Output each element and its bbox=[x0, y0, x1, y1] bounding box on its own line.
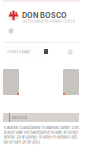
staticText: NOVICE bbox=[12, 115, 27, 120]
staticText: Katoliški Salezijanski mladinski center … bbox=[3, 125, 78, 144]
staticText: DON BOSCO bbox=[22, 11, 67, 20]
staticText: Select a page bbox=[7, 49, 30, 54]
staticText: SALEZIJANSKI MLADINSKI CENTER bbox=[22, 20, 75, 23]
